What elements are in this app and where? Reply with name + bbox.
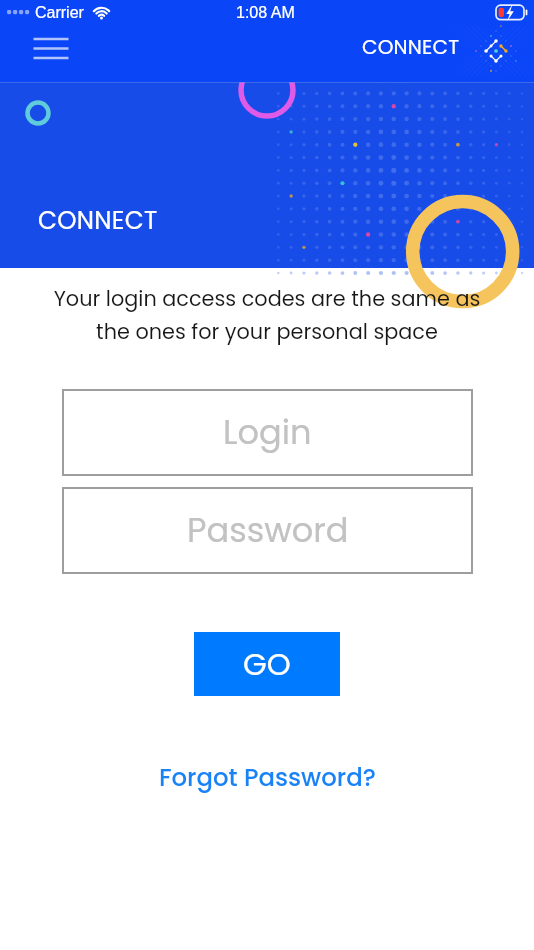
staticText: GO bbox=[243, 643, 291, 686]
staticText: Forgot Password? bbox=[159, 760, 376, 794]
button[interactable]: Login bbox=[62, 389, 473, 476]
button[interactable]: GO bbox=[194, 632, 340, 696]
staticText: Carrier bbox=[35, 4, 84, 22]
staticText: Your login access codes are the same as … bbox=[0, 284, 534, 346]
button[interactable]: Menu bbox=[26, 32, 76, 66]
staticText: Password bbox=[187, 507, 349, 554]
button[interactable]: Forgot Password? bbox=[148, 754, 386, 800]
staticText: Login bbox=[223, 409, 312, 456]
button[interactable]: CONNECT bbox=[362, 33, 460, 61]
button[interactable]: Password bbox=[62, 487, 473, 574]
staticText: CONNECT bbox=[38, 203, 158, 237]
staticText: 1:08 AM bbox=[236, 4, 295, 22]
staticText: CONNECT bbox=[362, 33, 460, 61]
